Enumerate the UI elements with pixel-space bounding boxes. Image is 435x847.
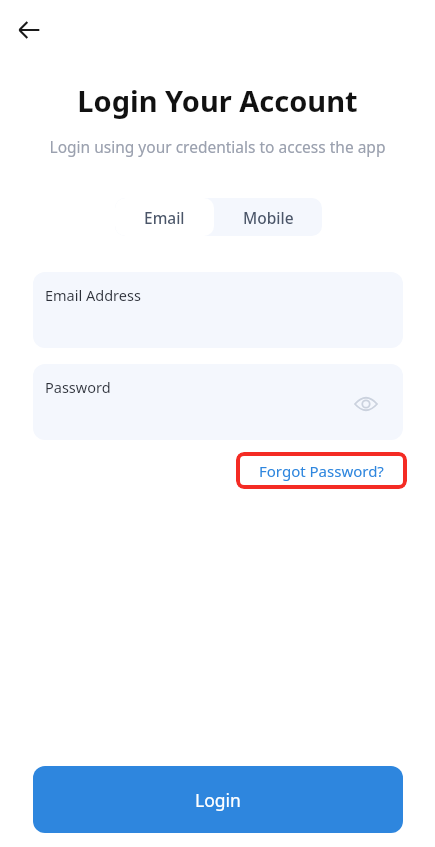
button[interactable]: Password [33,364,403,440]
staticText: Email Address [45,285,141,305]
staticText: Mobile [243,207,294,228]
button[interactable]: Email [115,198,214,236]
button[interactable]: Back [10,11,48,49]
button[interactable]: Forgot Password? [236,452,407,489]
staticText: Login Your Account [0,81,435,120]
button[interactable]: Login [33,766,403,833]
staticText: Forgot Password? [259,461,384,481]
staticText: Email [144,207,185,228]
button[interactable]: Show password [348,386,384,422]
staticText: Login [195,788,241,812]
button[interactable]: Mobile [214,198,322,236]
staticText: Login using your credentials to access t… [0,136,435,157]
button[interactable]: Email Address [33,272,403,348]
staticText: Password [45,377,111,397]
